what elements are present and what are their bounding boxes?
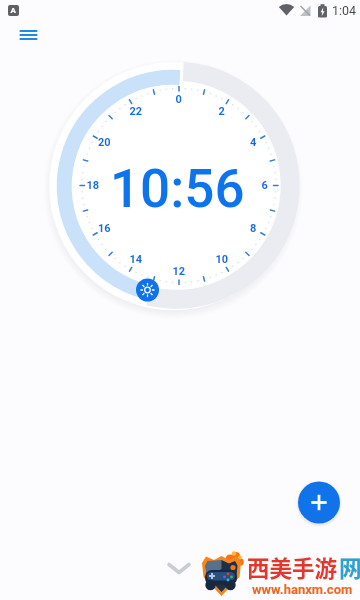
staticText: 10:56 — [110, 158, 245, 219]
